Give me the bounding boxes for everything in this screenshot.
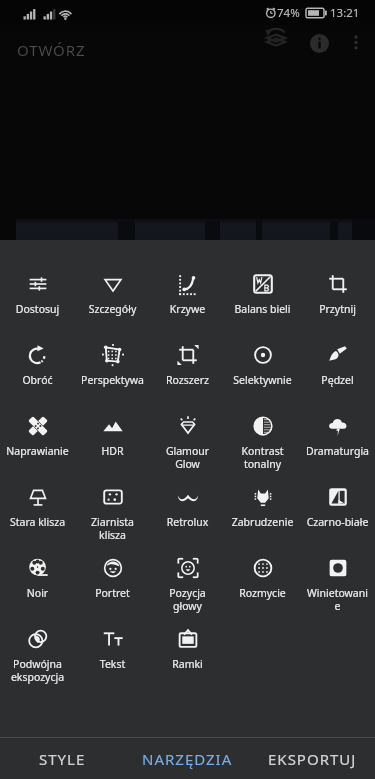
staticText: Selektywnie [230, 373, 295, 387]
staticText: Dramaturgia [305, 444, 370, 458]
staticText: EKSPORTUJ [268, 749, 357, 769]
staticText: 13:21 [330, 5, 360, 21]
staticText: Perspektywa [80, 373, 145, 387]
button[interactable]: HDR [75, 390, 150, 461]
staticText: Rozmycie [230, 586, 295, 600]
staticText: Naprawianie [5, 444, 70, 458]
button[interactable]: Noir [0, 532, 75, 603]
button[interactable]: Rozszerz [150, 319, 225, 390]
button[interactable]: Balans bieli [225, 248, 300, 319]
button[interactable]: EKSPORTUJ [250, 738, 375, 779]
button[interactable]: Selektywnie [225, 319, 300, 390]
staticText: Tekst [80, 657, 145, 671]
button[interactable]: Glamour Glow [150, 390, 225, 461]
button[interactable]: Cofnij [262, 25, 290, 53]
button[interactable]: Pędzel [300, 319, 375, 390]
button[interactable]: Kontrast tonalny [225, 390, 300, 461]
staticText: 74% [277, 5, 300, 21]
staticText: Ramki [155, 657, 220, 671]
staticText: NARZĘDZIA [142, 749, 233, 769]
button[interactable]: Ramki [150, 603, 225, 674]
button[interactable]: Szczegóły [75, 248, 150, 319]
staticText: Noir [5, 586, 70, 600]
button[interactable]: STYLE [0, 738, 125, 779]
button[interactable]: NARZĘDZIA [125, 738, 250, 779]
staticText: Stara klisza [5, 515, 70, 529]
button[interactable]: Podwójna ekspozycja [0, 603, 75, 674]
staticText: HDR [80, 444, 145, 458]
button[interactable]: Naprawianie [0, 390, 75, 461]
staticText: Balans bieli [230, 302, 295, 316]
staticText: Glamour Glow [155, 444, 220, 471]
button[interactable]: Winietowanie [300, 532, 375, 603]
button[interactable]: Przytnij [300, 248, 375, 319]
staticText: Podwójna ekspozycja [5, 657, 70, 684]
button[interactable]: Zabrudzenie [225, 461, 300, 532]
staticText: Ziarnista klisza [80, 515, 145, 542]
staticText: Obróć [5, 373, 70, 387]
staticText: Pozycja głowy [155, 586, 220, 613]
button[interactable]: Dramaturgia [300, 390, 375, 461]
staticText: Dostosuj [5, 302, 70, 316]
staticText: Krzywe [155, 302, 220, 316]
staticText: Rozszerz [155, 373, 220, 387]
button[interactable]: Pozycja głowy [150, 532, 225, 603]
button[interactable]: Krzywe [150, 248, 225, 319]
staticText: Zabrudzenie [230, 515, 295, 529]
button[interactable]: Retrolux [150, 461, 225, 532]
button[interactable]: Tekst [75, 603, 150, 674]
staticText: OTWÓRZ [17, 40, 86, 60]
staticText: Winietowanie [305, 586, 370, 613]
button[interactable]: Ziarnista klisza [75, 461, 150, 532]
staticText: Czarno-białe [305, 515, 370, 529]
staticText: Szczegóły [80, 302, 145, 316]
button[interactable]: Informacje [305, 29, 333, 57]
button[interactable]: Obróć [0, 319, 75, 390]
staticText: Kontrast tonalny [230, 444, 295, 471]
button[interactable]: Czarno-białe [300, 461, 375, 532]
button[interactable]: Więcej opcji [342, 29, 370, 57]
staticText: Portret [80, 586, 145, 600]
button[interactable]: Stara klisza [0, 461, 75, 532]
staticText: Przytnij [305, 302, 370, 316]
staticText: Retrolux [155, 515, 220, 529]
button[interactable]: Dostosuj [0, 248, 75, 319]
button[interactable]: Perspektywa [75, 319, 150, 390]
staticText: Pędzel [305, 373, 370, 387]
button[interactable]: Portret [75, 532, 150, 603]
staticText: STYLE [39, 749, 86, 769]
button[interactable]: Rozmycie [225, 532, 300, 603]
